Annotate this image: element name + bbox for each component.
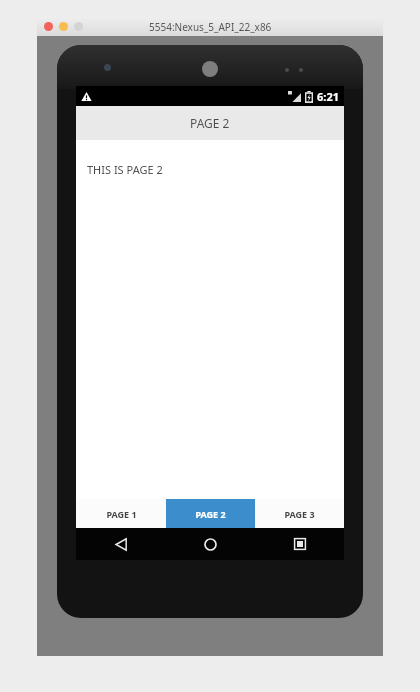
- staticText: PAGE 2: [195, 508, 226, 520]
- button[interactable]: PAGE 2: [166, 499, 255, 528]
- button[interactable]: PAGE 1: [76, 499, 166, 528]
- button[interactable]: Home: [166, 528, 255, 560]
- button[interactable]: PAGE 3: [255, 499, 344, 528]
- staticText: PAGE 2: [190, 115, 230, 131]
- button[interactable]: Back: [76, 528, 166, 560]
- button[interactable]: Minimize window: [59, 22, 68, 31]
- staticText: 6:21: [317, 89, 339, 104]
- staticText: PAGE 3: [284, 508, 315, 520]
- staticText: THIS IS PAGE 2: [87, 162, 163, 177]
- button[interactable]: Recent apps: [255, 528, 344, 560]
- staticText: PAGE 1: [106, 508, 137, 520]
- button[interactable]: Close window: [44, 22, 53, 31]
- staticText: 5554:Nexus_5_API_22_x86: [149, 20, 272, 34]
- button[interactable]: Zoom window: [74, 22, 83, 31]
